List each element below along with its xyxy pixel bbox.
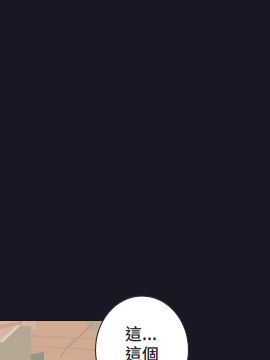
staticText: 這... xyxy=(125,321,157,345)
staticText: 這個 xyxy=(125,341,159,360)
